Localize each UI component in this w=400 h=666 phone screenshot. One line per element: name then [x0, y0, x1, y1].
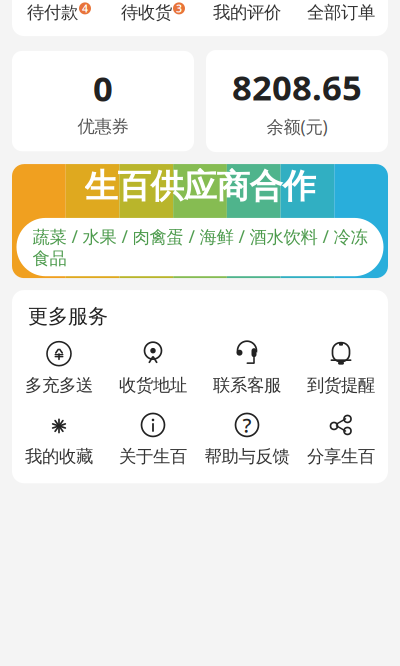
button[interactable]: 我的评价 — [200, 0, 294, 23]
button[interactable]: 我的收藏 — [12, 412, 106, 467]
button[interactable]: 生百供应商合作 — [12, 164, 388, 278]
staticText: 0 — [93, 65, 113, 111]
staticText: 更多服务 — [28, 304, 108, 329]
staticText: 余额(元) — [266, 115, 327, 138]
button[interactable]: 0 — [12, 51, 194, 151]
button[interactable]: 待付款 — [12, 0, 106, 23]
staticText: 全部订单 — [307, 2, 375, 23]
staticText: ? — [242, 412, 251, 438]
staticText: 我的收藏 — [25, 446, 93, 467]
staticText: 蔬菜 / 水果 / 肉禽蛋 / 海鲜 / 酒水饮料 / 冷冻食品 — [32, 225, 367, 269]
button[interactable]: 多充多送 — [12, 341, 106, 396]
staticText: 收货地址 — [119, 375, 187, 396]
staticText: 生百供应商合作 — [84, 166, 315, 207]
button[interactable]: 待收货 — [106, 0, 200, 23]
staticText: 分享生百 — [307, 446, 375, 467]
staticText: 3 — [176, 1, 182, 15]
staticText: 关于生百 — [119, 446, 187, 467]
button[interactable]: ? — [200, 412, 294, 467]
staticText: 到货提醒 — [307, 375, 375, 396]
button[interactable]: 分享生百 — [294, 412, 388, 467]
button[interactable]: 联系客服 — [200, 341, 294, 396]
staticText: 我的评价 — [213, 2, 281, 23]
button[interactable]: 到货提醒 — [294, 341, 388, 396]
button[interactable]: 全部订单 — [294, 0, 388, 23]
staticText: 待收货 — [121, 2, 172, 23]
staticText: 4 — [82, 1, 88, 15]
staticText: 待付款 — [27, 2, 78, 23]
button[interactable]: 8208.65 — [206, 50, 388, 152]
button[interactable]: 关于生百 — [106, 412, 200, 467]
staticText: 多充多送 — [25, 375, 93, 396]
staticText: 优惠券 — [77, 116, 128, 137]
staticText: 帮助与反馈 — [204, 446, 289, 467]
staticText: 8208.65 — [232, 64, 362, 110]
button[interactable]: 收货地址 — [106, 341, 200, 396]
staticText: 联系客服 — [213, 375, 281, 396]
